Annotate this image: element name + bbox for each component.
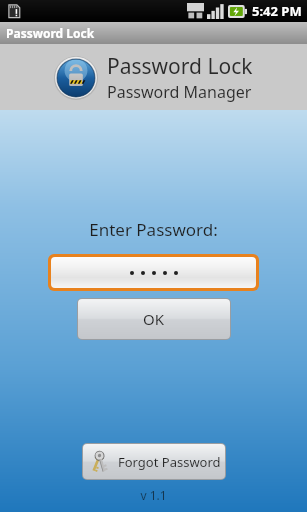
staticText: Password Lock	[107, 52, 253, 81]
staticText: v 1.1	[0, 487, 307, 503]
button[interactable]	[48, 254, 259, 291]
staticText: Password Manager	[107, 81, 252, 103]
staticText: 5:42 PM	[252, 2, 302, 20]
staticText: Forgot Password	[118, 453, 221, 471]
button[interactable]: Forgot Password	[82, 443, 226, 480]
staticText: Enter Password:	[0, 218, 307, 241]
button[interactable]: OK	[77, 298, 231, 340]
staticText: OK	[143, 309, 165, 329]
staticText: Password Lock	[6, 25, 95, 41]
